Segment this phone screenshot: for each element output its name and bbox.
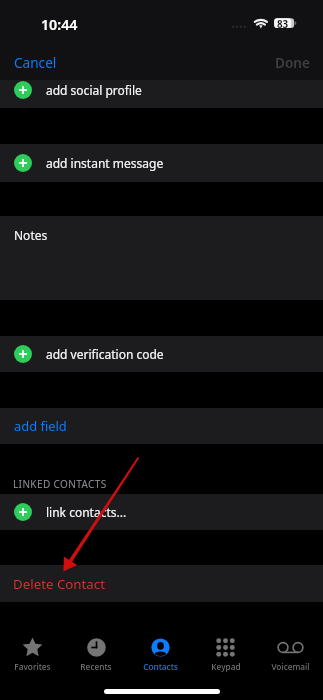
button[interactable]: Favorites (0, 629, 64, 677)
button[interactable]: add verification code (0, 336, 323, 372)
button[interactable]: Voicemail (258, 629, 323, 677)
button[interactable]: add social profile (0, 80, 323, 100)
staticText: Notes (14, 227, 48, 243)
staticText: Favorites (14, 661, 51, 672)
staticText: add verification code (46, 346, 164, 362)
staticText: Done (275, 53, 310, 72)
button[interactable]: Done (269, 50, 316, 74)
button[interactable]: Contacts (128, 629, 193, 677)
staticText: Keypad (211, 661, 241, 672)
button[interactable]: Cancel (8, 50, 63, 74)
staticText: Recents (80, 661, 112, 672)
staticText: add instant message (46, 155, 164, 171)
button[interactable]: link contacts... (0, 494, 323, 530)
button[interactable]: Delete Contact (0, 565, 323, 602)
staticText: Voicemail (271, 661, 310, 672)
button[interactable]: add instant message (0, 144, 323, 182)
button[interactable]: Keypad (193, 629, 258, 677)
staticText: add social profile (46, 82, 142, 98)
staticText: 83 (277, 18, 289, 31)
staticText: Cancel (14, 53, 57, 72)
staticText: add field (14, 417, 67, 435)
staticText: Delete Contact (13, 575, 106, 593)
staticText: 10:44 (41, 15, 78, 34)
button[interactable]: add field (0, 408, 323, 444)
staticText: LINKED CONTACTS (13, 477, 107, 491)
staticText: link contacts... (46, 504, 127, 520)
button[interactable]: Recents (64, 629, 128, 677)
staticText: Contacts (143, 661, 178, 672)
